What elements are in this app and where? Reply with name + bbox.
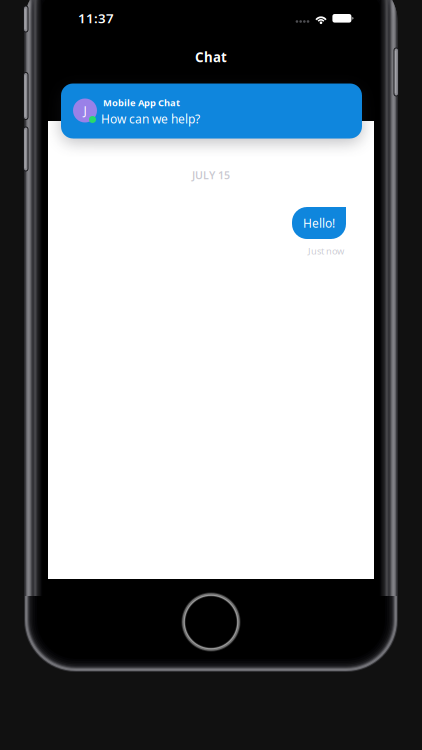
staticText: How can we help? — [101, 111, 200, 127]
button[interactable]: J — [61, 83, 362, 138]
staticText: Just now — [308, 245, 344, 257]
staticText: JULY 15 — [192, 168, 230, 182]
button[interactable]: Ring/Silent switch — [23, 5, 29, 32]
button[interactable]: Chat — [166, 43, 256, 71]
staticText: Mobile App Chat — [103, 96, 180, 109]
button[interactable]: Home — [181, 592, 241, 652]
staticText: J — [83, 102, 86, 118]
button[interactable]: Side button — [393, 47, 399, 96]
staticText: Chat — [195, 48, 227, 66]
staticText: Hello! — [303, 215, 335, 231]
staticText: 11:37 — [78, 9, 114, 27]
button[interactable]: Volume down — [23, 126, 29, 171]
button[interactable]: Volume up — [23, 72, 29, 120]
